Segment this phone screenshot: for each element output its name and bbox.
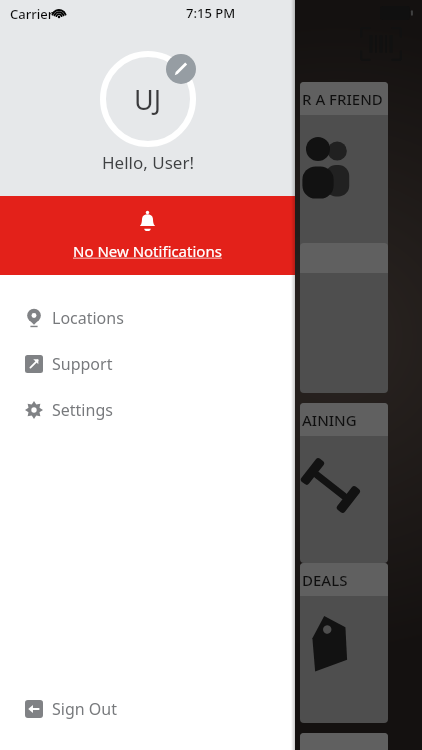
button[interactable]: DEALS <box>300 563 388 723</box>
staticText: Support <box>52 353 113 375</box>
staticText: 7:15 PM <box>186 4 236 22</box>
button[interactable]: Sign Out <box>0 686 295 732</box>
staticText: No New Notifications <box>73 241 222 261</box>
staticText: Locations <box>52 307 124 329</box>
button[interactable]: Locations <box>0 295 295 341</box>
button[interactable]: Settings <box>0 387 295 433</box>
button[interactable]: No New Notifications <box>0 196 295 275</box>
staticText: Carrier <box>10 5 54 23</box>
button[interactable]: AINING <box>300 403 388 563</box>
button[interactable]: Support <box>0 341 295 387</box>
button[interactable]: UJ <box>100 51 196 147</box>
staticText: R A FRIEND <box>302 89 383 109</box>
button[interactable]: Edit profile <box>166 54 196 84</box>
staticText: Settings <box>52 399 113 421</box>
button[interactable]: R A FRIEND <box>300 82 388 297</box>
staticText: DEALS <box>302 570 348 590</box>
staticText: UJ <box>134 81 162 118</box>
button[interactable] <box>300 243 388 393</box>
button[interactable] <box>300 733 388 750</box>
staticText: AINING <box>302 410 357 430</box>
staticText: Sign Out <box>52 698 117 720</box>
staticText: Hello, User! <box>102 151 194 174</box>
